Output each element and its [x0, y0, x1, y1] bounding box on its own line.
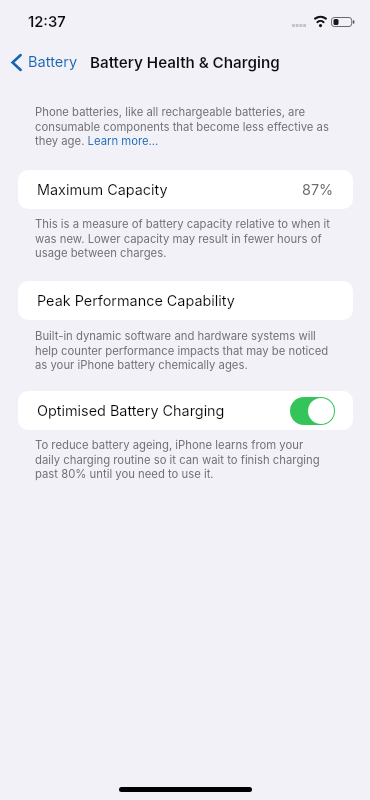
button[interactable]: Battery: [11, 53, 78, 71]
staticText: Battery Health & Charging: [90, 53, 280, 71]
button[interactable]: Optimised Battery Charging: [18, 391, 353, 430]
staticText: Built-in dynamic software and hardware s…: [35, 329, 331, 371]
button[interactable]: Maximum Capacity: [18, 170, 353, 209]
staticText: Peak Performance Capability: [37, 292, 235, 309]
staticText: Optimised Battery Charging: [37, 402, 225, 419]
staticText: To reduce battery ageing, iPhone learns …: [35, 438, 331, 480]
button[interactable]: Optimised Battery Charging: [290, 397, 335, 425]
staticText: 87%: [302, 181, 334, 198]
staticText: Battery: [28, 53, 78, 71]
staticText: This is a measure of battery capacity re…: [35, 217, 331, 259]
staticText: Maximum Capacity: [37, 181, 168, 198]
staticText: Phone batteries, like all rechargeable b…: [35, 105, 331, 147]
staticText: 12:37: [28, 13, 66, 31]
button[interactable]: Peak Performance Capability: [18, 281, 353, 320]
